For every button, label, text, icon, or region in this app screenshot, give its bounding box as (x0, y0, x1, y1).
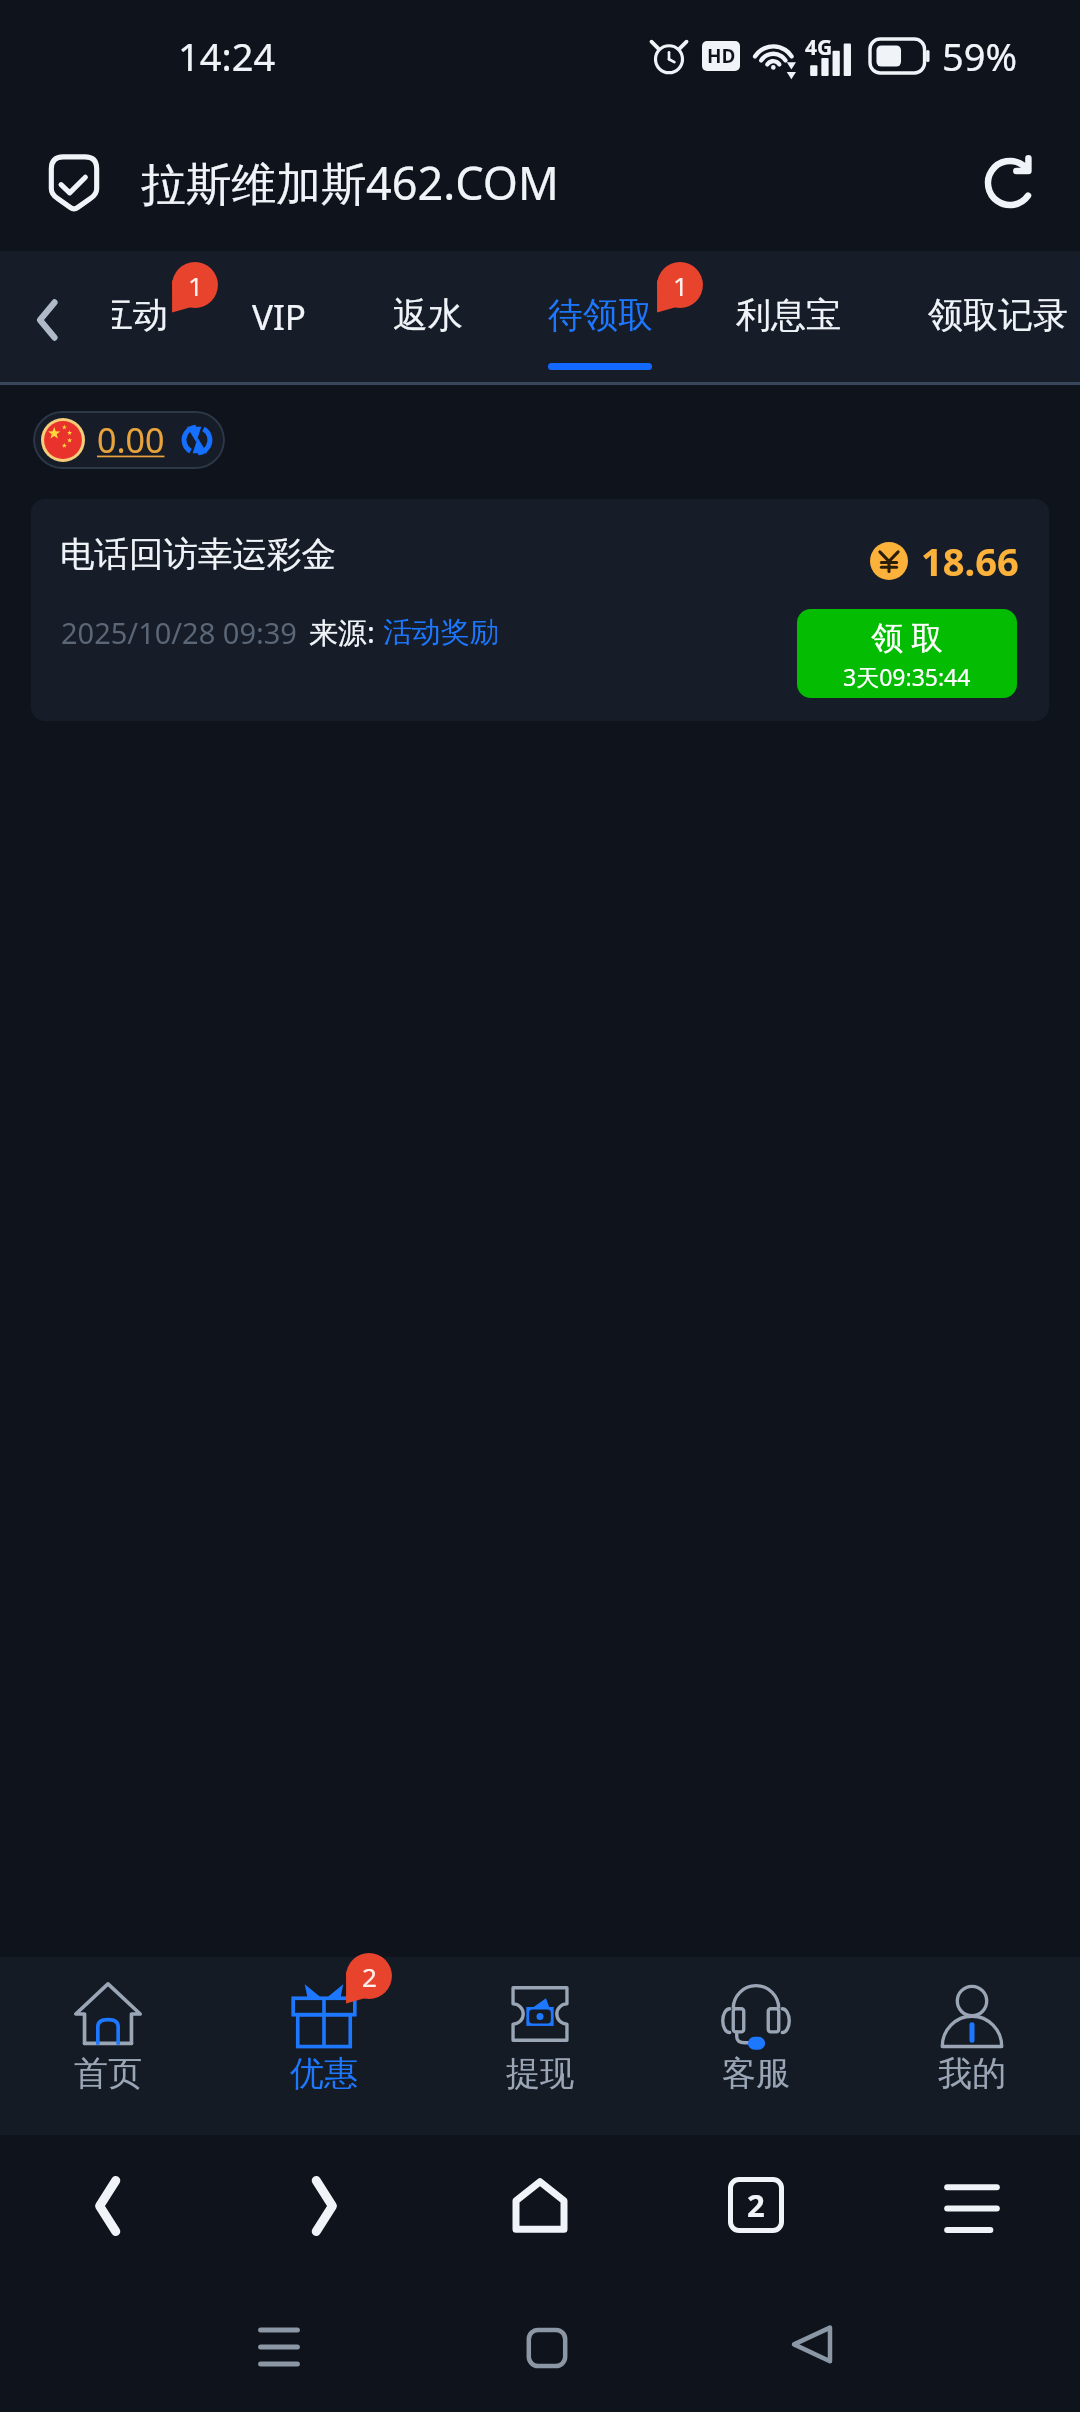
staticText: 返水 (393, 293, 463, 337)
staticText: 3天09:35:44 (843, 661, 971, 692)
staticText: 利息宝 (736, 293, 841, 337)
staticText: 2025/10/28 09:39 (61, 613, 297, 652)
staticText: 1 (188, 268, 203, 303)
button[interactable]: Refresh (966, 139, 1054, 227)
staticText: 2 (747, 2184, 765, 2226)
button[interactable]: 提现 (432, 1957, 648, 2135)
button[interactable]: VIP (238, 273, 321, 363)
staticText: 首页 (74, 2052, 142, 2095)
staticText: 活动奖励 (383, 614, 499, 651)
staticText: 1 (673, 268, 688, 303)
staticText: 电话回访幸运彩金 (60, 533, 336, 576)
button[interactable]: 领取记录 (914, 273, 1080, 363)
button[interactable]: Home (487, 2285, 607, 2412)
button[interactable]: 电话回访幸运彩金 (31, 499, 1049, 721)
button[interactable]: Home (432, 2135, 648, 2285)
staticText: 0.00 (97, 417, 165, 463)
staticText: 客服 (722, 2052, 790, 2095)
staticText: 59% (942, 30, 1018, 82)
staticText: 来源: (309, 612, 383, 652)
button[interactable]: 领 取 (797, 609, 1017, 698)
staticText: 18.66 (921, 535, 1019, 587)
staticText: 领 取 (871, 615, 944, 659)
button[interactable]: Forward (216, 2135, 432, 2285)
staticText: 我的 (938, 2052, 1006, 2095)
staticText: 拉斯维加斯462.COM (141, 152, 559, 213)
button[interactable]: 我的 (864, 1957, 1080, 2135)
button[interactable]: Back (13, 251, 81, 385)
staticText: 提现 (506, 2052, 574, 2095)
button[interactable]: 互动 (112, 273, 182, 363)
button[interactable]: Back (0, 2135, 216, 2285)
button[interactable]: 利息宝 (722, 273, 855, 363)
button[interactable]: 2 (216, 1957, 432, 2135)
staticText: 优惠 (290, 2052, 358, 2095)
button[interactable]: 待领取 (534, 273, 667, 363)
button[interactable]: 0.00 (33, 411, 225, 469)
staticText: 2 (362, 1959, 377, 1994)
staticText: HD (707, 43, 736, 69)
button[interactable]: 客服 (648, 1957, 864, 2135)
button[interactable]: Menu (864, 2135, 1080, 2285)
staticText: 待领取 (548, 293, 653, 337)
button[interactable]: 返水 (379, 273, 477, 363)
button[interactable]: Secure site (28, 137, 120, 229)
button[interactable]: Back (752, 2285, 872, 2412)
staticText: 领取记录 (928, 293, 1068, 337)
staticText: 互动 (112, 293, 168, 337)
staticText: 4G (805, 33, 833, 62)
button[interactable]: 首页 (0, 1957, 216, 2135)
staticText: VIP (252, 293, 307, 341)
button[interactable]: Tabs (648, 2135, 864, 2285)
button[interactable]: Recents (219, 2285, 339, 2412)
staticText: 14:24 (178, 30, 276, 82)
